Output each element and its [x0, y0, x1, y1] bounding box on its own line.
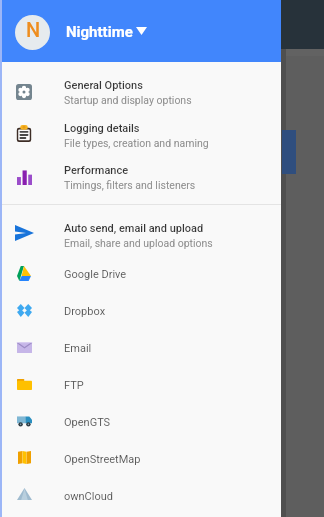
- button[interactable]: FTP: [0, 366, 281, 403]
- staticText: Logging details: [64, 122, 140, 135]
- button[interactable]: Email: [0, 329, 281, 366]
- staticText: OpenGTS: [64, 416, 111, 429]
- staticText: Performance: [64, 164, 129, 177]
- other: Select profile: [136, 27, 147, 35]
- button[interactable]: OpenGTS: [0, 403, 281, 440]
- other: Google Drive: [17, 266, 31, 281]
- other: General options: [16, 84, 32, 100]
- button[interactable]: Google Drive: [0, 255, 281, 292]
- staticText: Timings, filters and listeners: [64, 179, 196, 191]
- other: Auto send: [15, 225, 34, 241]
- button[interactable]: Performance: [0, 147, 281, 189]
- staticText: OpenStreetMap: [64, 453, 141, 466]
- button[interactable]: Auto send: [0, 205, 281, 247]
- button[interactable]: N: [0, 0, 281, 62]
- staticText: FTP: [64, 379, 84, 392]
- other: ownCloud: [17, 488, 32, 500]
- button[interactable]: ownCloud: [0, 477, 281, 514]
- staticText: Email, share and upload options: [64, 237, 213, 249]
- staticText: ownCloud: [64, 490, 113, 503]
- other: Logging details: [16, 125, 32, 142]
- staticText: Auto send, email and upload: [64, 222, 204, 235]
- staticText: Google Drive: [64, 268, 127, 281]
- other: Email: [17, 342, 32, 353]
- staticText: General Options: [64, 79, 143, 92]
- staticText: N: [26, 18, 41, 41]
- other: OpenStreetMap: [18, 451, 31, 464]
- button[interactable]: General options: [0, 62, 281, 104]
- staticText: Nighttime: [66, 23, 133, 41]
- staticText: File types, creation and naming: [64, 137, 209, 149]
- button[interactable]: Logging details: [0, 105, 281, 147]
- staticText: Startup and display options: [64, 94, 192, 106]
- other: Performance: [17, 170, 32, 185]
- staticText: Email: [64, 342, 92, 355]
- other: Dropbox: [17, 304, 32, 317]
- button[interactable]: OpenStreetMap: [0, 440, 281, 477]
- button[interactable]: Dropbox: [0, 292, 281, 329]
- other: OpenGTS: [17, 416, 32, 427]
- staticText: Dropbox: [64, 305, 106, 318]
- other: FTP: [17, 379, 32, 390]
